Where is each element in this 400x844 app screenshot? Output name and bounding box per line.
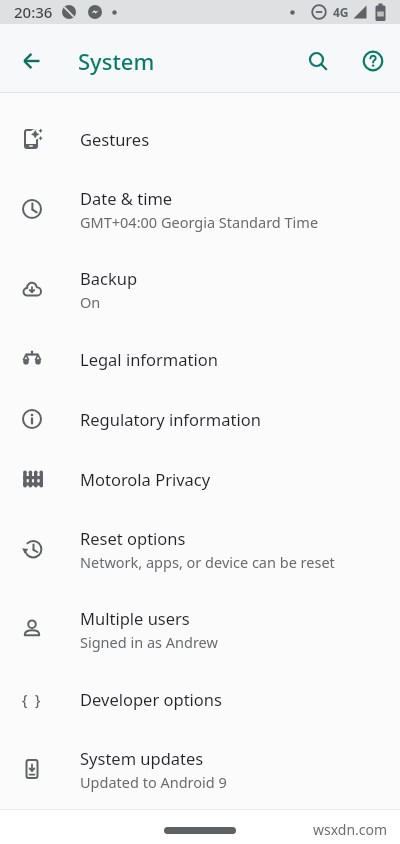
staticText: wsxdn.com [313, 820, 388, 839]
button[interactable]: { } [0, 669, 400, 729]
staticText: System updates [80, 747, 204, 769]
staticText: GMT+04:00 Georgia Standard Time [80, 212, 319, 232]
staticText: Multiple users [80, 607, 190, 629]
staticText: Date & time [80, 187, 173, 209]
staticText: Regulatory information [80, 408, 261, 430]
staticText: System [78, 46, 155, 76]
staticText: 4G [333, 4, 349, 20]
staticText: 20:36 [14, 2, 53, 22]
staticText: Signed in as Andrew [80, 632, 218, 652]
button[interactable] [164, 827, 236, 834]
staticText: Gestures [80, 128, 150, 150]
button[interactable]: System updates [0, 729, 400, 809]
button[interactable]: Legal information [0, 329, 400, 389]
button[interactable]: Regulatory information [0, 389, 400, 449]
staticText: On [80, 292, 101, 312]
staticText: Network, apps, or device can be reset [80, 552, 335, 572]
button[interactable]: Reset options [0, 509, 400, 589]
button[interactable]: Backup [0, 249, 400, 329]
button[interactable]: Multiple users [0, 589, 400, 669]
staticText: Backup [80, 267, 138, 289]
staticText: Updated to Android 9 [80, 772, 227, 792]
button[interactable]: Gestures [0, 109, 400, 169]
staticText: Motorola Privacy [80, 468, 211, 490]
staticText: Developer options [80, 688, 222, 710]
button[interactable] [351, 39, 395, 83]
button[interactable]: Date & time [0, 169, 400, 249]
button[interactable]: Motorola Privacy [0, 449, 400, 509]
staticText: { } [22, 690, 43, 709]
staticText: Reset options [80, 527, 186, 549]
button[interactable] [8, 37, 56, 85]
staticText: Legal information [80, 348, 218, 370]
button[interactable] [296, 39, 340, 83]
